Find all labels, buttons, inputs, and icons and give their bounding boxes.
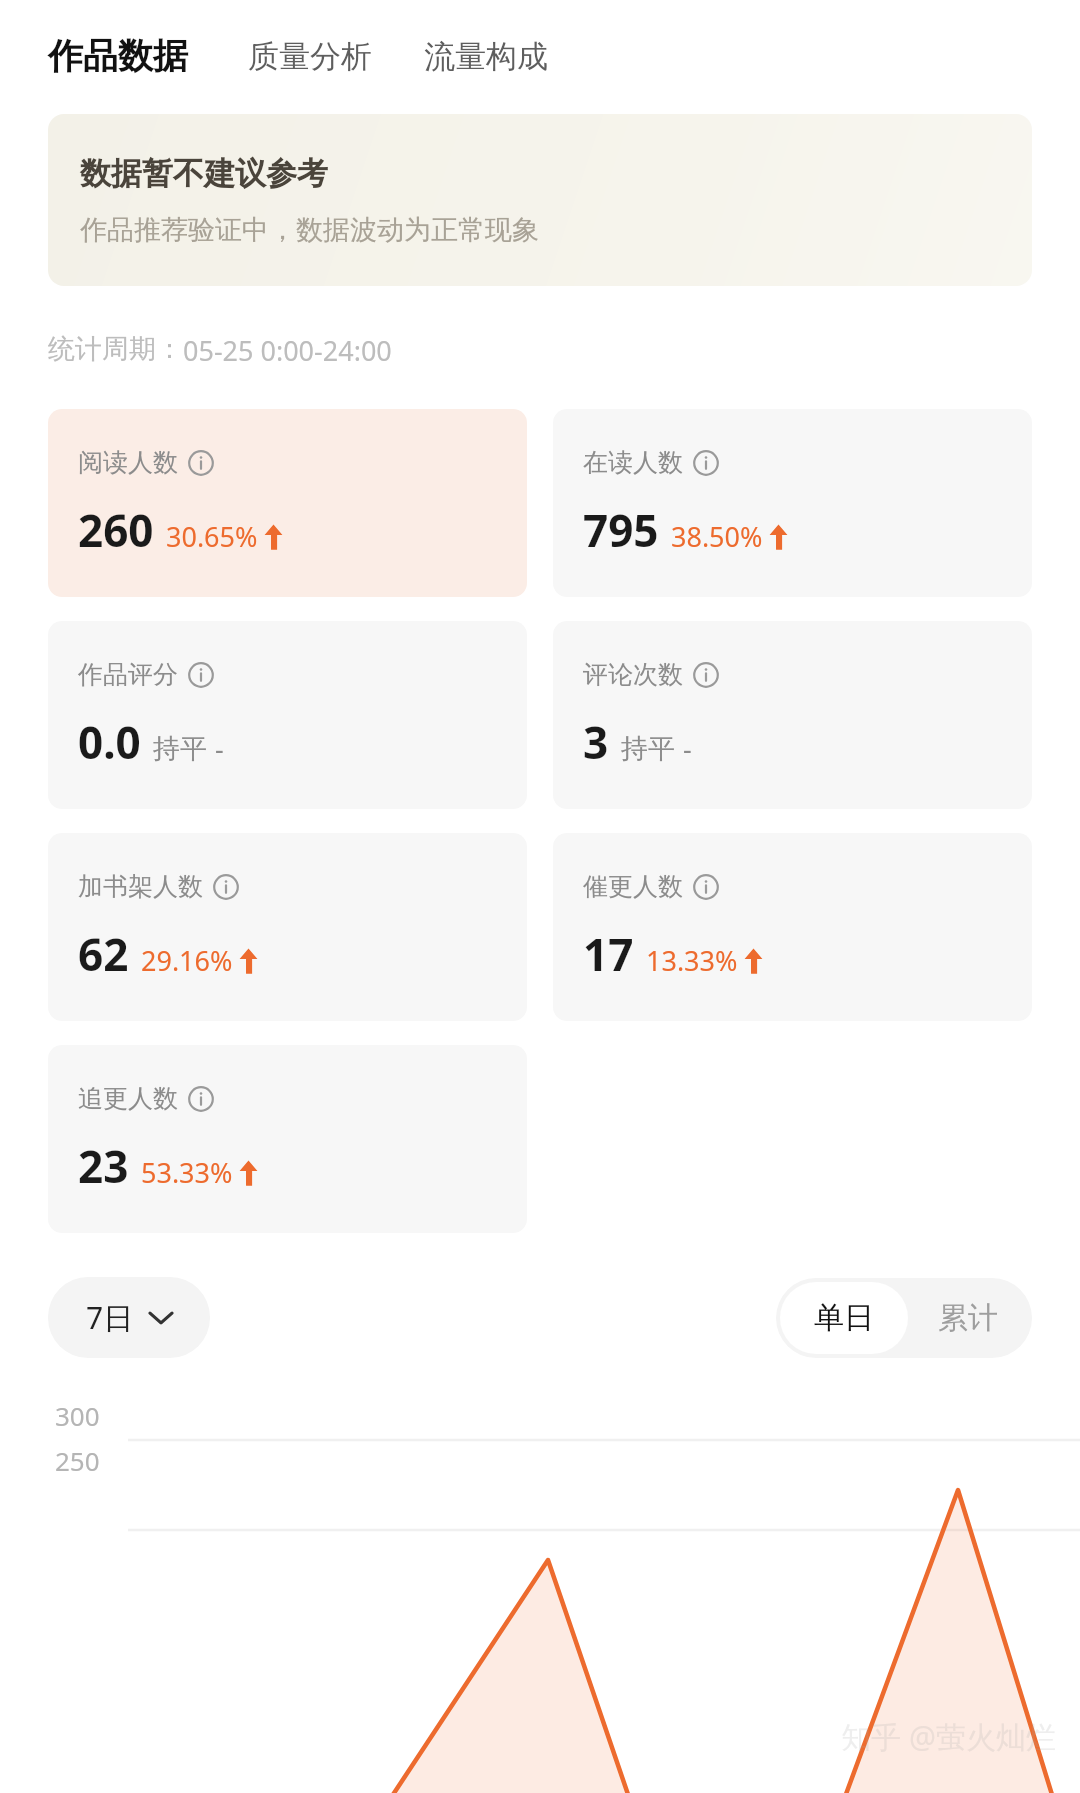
button[interactable]: 作品数据 [48,34,188,78]
button[interactable]: 评论次数 [553,621,1032,809]
staticText: 持平 [621,732,675,766]
staticText: 作品推荐验证中，数据波动为正常现象 [80,213,539,247]
button[interactable]: 阅读人数 [48,409,527,597]
staticText: 阅读人数 [78,447,178,478]
button[interactable]: 追更人数 [48,1045,527,1233]
staticText: - [215,730,224,767]
staticText: 3 [583,712,609,772]
button[interactable]: 加书架人数 [48,833,527,1021]
button[interactable]: 累计 [908,1282,1028,1354]
staticText: 300 [55,1398,100,1433]
staticText: 统计周期： [48,332,183,366]
button[interactable]: 作品评分 [48,621,527,809]
staticText: 持平 [153,732,207,766]
staticText: 260 [78,500,154,560]
staticText: 在读人数 [583,447,683,478]
button[interactable]: 在读人数 [553,409,1032,597]
staticText: 作品评分 [78,659,178,690]
button[interactable]: 催更人数 [553,833,1032,1021]
staticText: 知乎 @萤火灿烂 [841,1716,1056,1757]
staticText: 数据暂不建议参考 [80,154,328,193]
staticText: 评论次数 [583,659,683,690]
staticText: 质量分析 [248,37,372,76]
staticText: 13.33% [646,942,738,979]
button[interactable]: 单日 [780,1282,908,1354]
staticText: 53.33% [141,1154,233,1191]
staticText: 7日 [86,1297,134,1338]
staticText: 38.50% [671,518,763,555]
button[interactable]: 7日 [48,1277,210,1358]
staticText: 加书架人数 [78,871,203,902]
staticText: 05-25 0:00-24:00 [183,332,392,369]
staticText: 23 [78,1136,129,1196]
staticText: 累计 [938,1299,998,1337]
staticText: 17 [583,924,634,984]
staticText: 30.65% [166,518,258,555]
staticText: 795 [583,500,659,560]
staticText: 单日 [814,1299,874,1337]
button[interactable]: 流量构成 [424,37,548,78]
staticText: 催更人数 [583,871,683,902]
staticText: 作品数据 [48,34,188,78]
staticText: 追更人数 [78,1083,178,1114]
button[interactable]: 质量分析 [248,37,372,78]
staticText: 250 [55,1443,100,1478]
staticText: - [683,730,692,767]
staticText: 62 [78,924,129,984]
staticText: 0.0 [78,712,141,772]
staticText: 29.16% [141,942,233,979]
staticText: 流量构成 [424,37,548,76]
button[interactable]: 数据暂不建议参考 [48,114,1032,286]
